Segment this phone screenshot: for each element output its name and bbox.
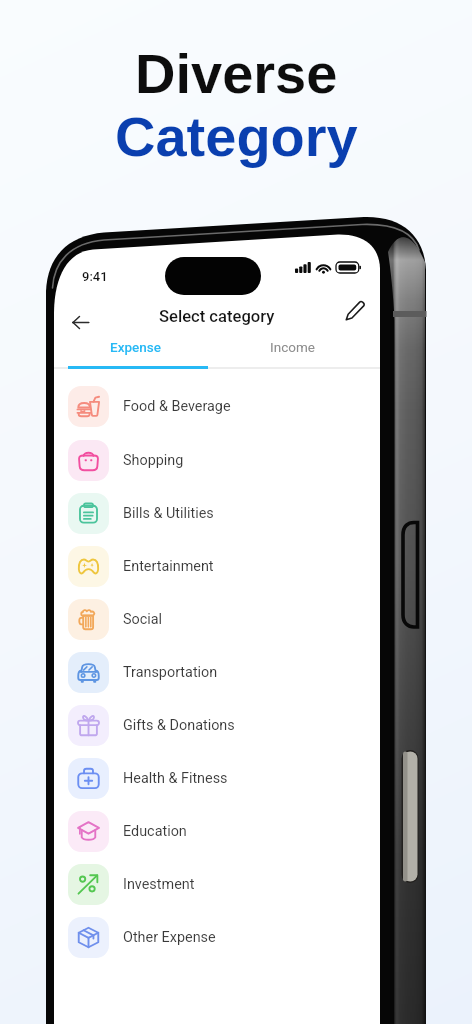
button[interactable]: Bills & Utilities [54, 487, 380, 540]
staticText: Gifts & Donations [123, 717, 235, 734]
staticText: Health & Fitness [123, 770, 228, 787]
button[interactable]: Education [54, 805, 380, 858]
button[interactable]: Expense [65, 333, 205, 361]
staticText: Entertainment [123, 558, 214, 575]
staticText: Shopping [123, 452, 184, 469]
button[interactable]: Select category [140, 298, 294, 334]
button[interactable]: Health & Fitness [54, 752, 380, 805]
button[interactable]: Back [62, 304, 98, 340]
button[interactable]: Other Expense [54, 911, 380, 964]
button[interactable]: Entertainment [54, 540, 380, 593]
staticText: 9:41 [82, 269, 108, 284]
staticText: Transportation [123, 664, 218, 681]
staticText: Category [115, 105, 358, 168]
staticText: Social [123, 611, 163, 628]
button[interactable]: Transportation [54, 646, 380, 699]
button[interactable]: Gifts & Donations [54, 699, 380, 752]
staticText: Other Expense [123, 929, 216, 946]
staticText: Select category [159, 307, 275, 326]
staticText: Expense [110, 339, 161, 355]
button[interactable]: Income [222, 333, 362, 361]
staticText: Income [270, 339, 315, 355]
button[interactable]: Food & Beverage [54, 380, 380, 433]
staticText: Bills & Utilities [123, 505, 214, 522]
button[interactable]: Investment [54, 858, 380, 911]
staticText: Food & Beverage [123, 398, 231, 415]
button[interactable]: Edit [337, 292, 373, 328]
staticText: Education [123, 823, 187, 840]
staticText: Diverse [135, 42, 338, 105]
button[interactable]: Social [54, 593, 380, 646]
button[interactable]: Shopping [54, 434, 380, 487]
staticText: Investment [123, 876, 195, 893]
